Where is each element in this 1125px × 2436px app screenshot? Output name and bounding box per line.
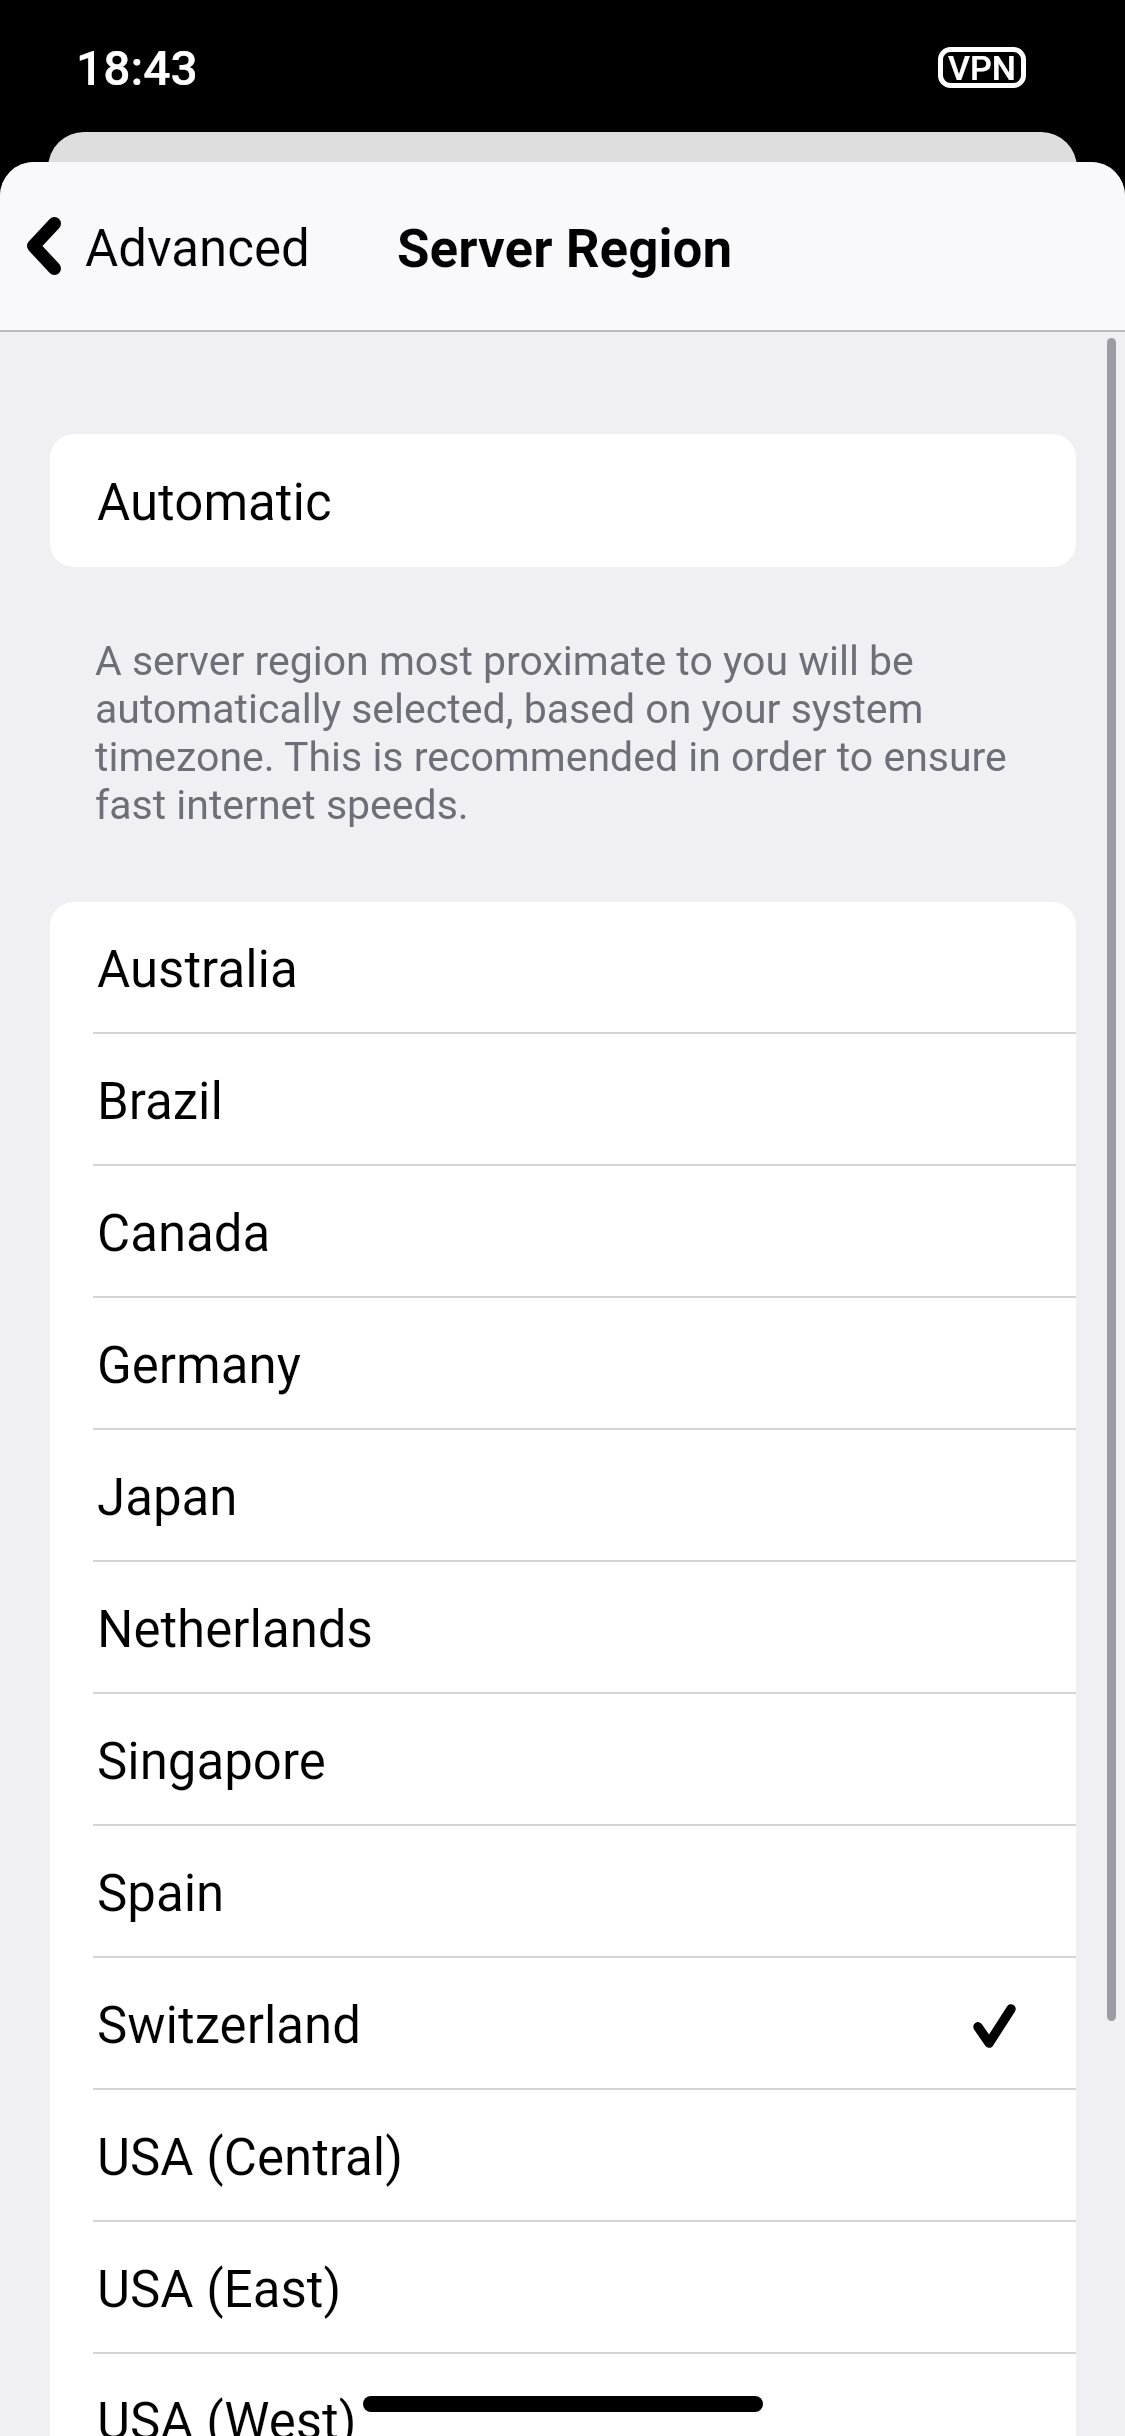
button[interactable]: Netherlands: [50, 1562, 1076, 1694]
button[interactable]: USA (East): [50, 2222, 1076, 2354]
staticText: VPN: [948, 48, 1016, 88]
other: Selected: [974, 2005, 1015, 2047]
staticText: Canada: [97, 1204, 271, 1264]
staticText: Singapore: [97, 1732, 326, 1792]
staticText: USA (Central): [97, 2128, 403, 2188]
staticText: Switzerland: [97, 1996, 361, 2056]
button[interactable]: USA (Central): [50, 2090, 1076, 2222]
button[interactable]: Canada: [50, 1166, 1076, 1298]
button[interactable]: Automatic: [50, 434, 1076, 567]
staticText: 18:43: [76, 40, 198, 96]
button[interactable]: Australia: [50, 902, 1076, 1034]
staticText: Japan: [97, 1468, 238, 1528]
staticText: Spain: [97, 1864, 225, 1924]
button[interactable]: Switzerland: [50, 1958, 1076, 2090]
button[interactable]: Singapore: [50, 1694, 1076, 1826]
staticText: Brazil: [97, 1072, 223, 1132]
button[interactable]: Spain: [50, 1826, 1076, 1958]
button[interactable]: Back to Advanced: [0, 162, 324, 330]
staticText: Server Region: [397, 218, 733, 280]
button[interactable]: Japan: [50, 1430, 1076, 1562]
staticText: Germany: [97, 1336, 301, 1396]
staticText: USA (East): [97, 2260, 342, 2320]
staticText: Automatic: [97, 473, 332, 533]
staticText: A server region most proximate to you wi…: [95, 637, 1035, 829]
button[interactable]: Germany: [50, 1298, 1076, 1430]
staticText: Netherlands: [97, 1600, 373, 1660]
staticText: Advanced: [85, 219, 310, 279]
staticText: Australia: [97, 940, 298, 1000]
staticText: USA (West): [97, 2392, 357, 2436]
button[interactable]: USA (West): [50, 2354, 1076, 2436]
button[interactable]: Brazil: [50, 1034, 1076, 1166]
